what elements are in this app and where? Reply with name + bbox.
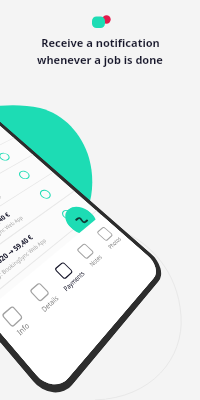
staticText: Added by: BookingSync Web App bbox=[0, 214, 25, 266]
staticText: Added by: BookingSync Web App bbox=[2, 260, 73, 324]
button[interactable]: Photos bbox=[82, 215, 135, 262]
button[interactable]: Info bbox=[0, 289, 50, 357]
button[interactable]: Sync bbox=[59, 202, 103, 240]
staticText: Notes bbox=[88, 253, 104, 268]
staticText: 15 Sept 2020 → 59,40 € bbox=[0, 210, 13, 259]
button[interactable]: 15 Sept 2020 → 59,40 € bbox=[0, 211, 121, 339]
button[interactable]: 15 Sept 2020 → 59,40 € bbox=[0, 191, 97, 307]
staticText: Added by: BookingSync Web App bbox=[0, 193, 3, 239]
staticText: Payments bbox=[61, 269, 87, 293]
staticText: Added by: BookingSync Web App bbox=[0, 236, 48, 293]
button[interactable]: Payments bbox=[38, 248, 97, 304]
button[interactable]: 15 Sept 2020 → 59,40 € bbox=[0, 138, 33, 226]
button[interactable]: Notes bbox=[62, 230, 117, 282]
staticText: Details bbox=[39, 293, 61, 314]
staticText: 15 Sept 2020 → 59,40 € bbox=[0, 257, 60, 316]
staticText: Receive a notification bbox=[41, 35, 160, 50]
staticText: 15 Sept 2020 → 59,40 € bbox=[0, 233, 36, 286]
button[interactable]: 15 Sept 2020 → 59,40 € bbox=[0, 155, 53, 251]
button[interactable]: 15 Sept 2020 → 59,40 € bbox=[0, 172, 75, 278]
button[interactable]: 15 Sept 2020 → 59,40 € bbox=[0, 122, 14, 202]
staticText: Info bbox=[15, 320, 32, 338]
button[interactable]: Details bbox=[12, 267, 75, 329]
staticText: whenever a job is done bbox=[37, 52, 163, 67]
staticText: Photos bbox=[106, 235, 123, 251]
